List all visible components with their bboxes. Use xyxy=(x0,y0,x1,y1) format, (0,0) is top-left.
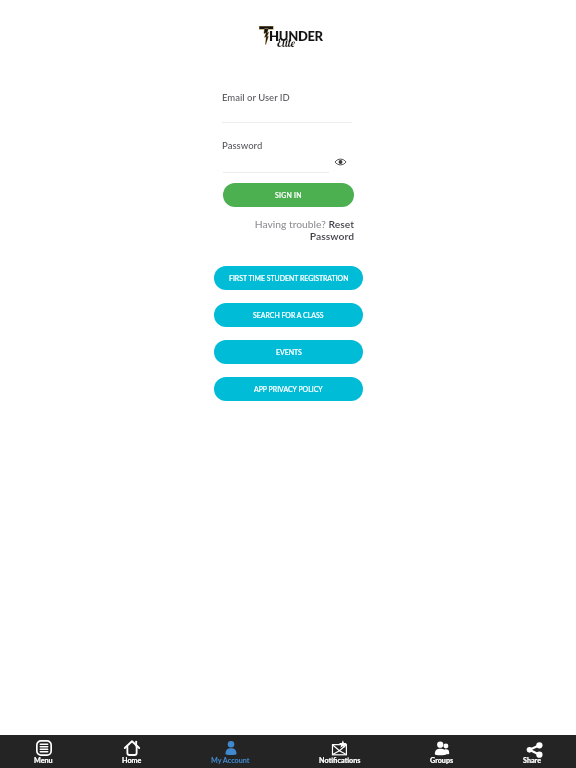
button[interactable]: SEARCH FOR A CLASS xyxy=(214,303,363,327)
button[interactable]: Having trouble? Reset Password xyxy=(254,218,354,242)
staticText: Groups xyxy=(430,756,454,765)
staticText: EVENTS xyxy=(276,348,302,356)
button[interactable]: Share xyxy=(523,737,542,765)
staticText: SIGN IN xyxy=(275,191,302,199)
staticText: HUNDER xyxy=(269,28,323,44)
button[interactable]: Menu xyxy=(34,737,53,765)
staticText: Menu xyxy=(34,756,53,765)
button[interactable]: Show password xyxy=(332,154,348,170)
staticText: Having trouble? Reset Password xyxy=(254,218,354,242)
staticText: Share xyxy=(523,756,542,765)
button[interactable]: EVENTS xyxy=(214,340,363,364)
button[interactable]: SIGN IN xyxy=(223,183,354,207)
button[interactable]: FIRST TIME STUDENT REGISTRATION xyxy=(214,266,363,290)
staticText: FIRST TIME STUDENT REGISTRATION xyxy=(229,274,349,282)
button[interactable]: Groups xyxy=(430,737,454,765)
button[interactable]: Notifications xyxy=(319,737,361,765)
button[interactable]: Home xyxy=(122,737,142,765)
staticText: Elite xyxy=(277,36,296,50)
staticText: Password xyxy=(222,140,263,151)
staticText: SEARCH FOR A CLASS xyxy=(253,311,324,319)
staticText: Notifications xyxy=(319,756,361,765)
staticText: Home xyxy=(122,756,142,765)
staticText: Email or User ID xyxy=(222,92,290,103)
button[interactable]: APP PRIVACY POLICY xyxy=(214,377,363,401)
button[interactable]: My Account xyxy=(211,737,250,765)
staticText: APP PRIVACY POLICY xyxy=(254,385,323,393)
staticText: My Account xyxy=(211,756,250,765)
